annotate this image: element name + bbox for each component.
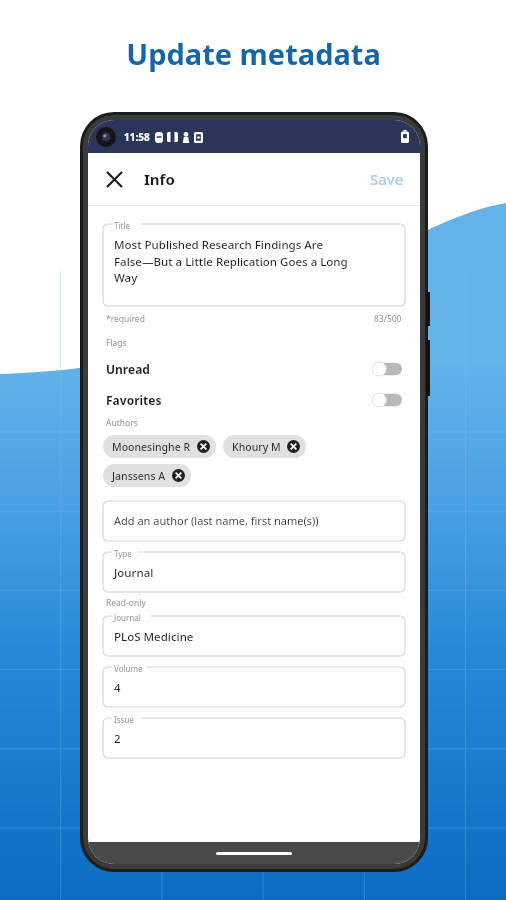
button[interactable]: Favorites [103, 384, 405, 415]
staticText: Favorites [106, 392, 162, 408]
button[interactable]: Unread [103, 353, 405, 384]
staticText: Type [114, 548, 132, 559]
staticText: Journal [114, 565, 154, 581]
staticText: Issue [114, 714, 134, 725]
button[interactable]: Add an author (last name, first name(s)) [103, 501, 405, 541]
staticText: Update metadata [126, 34, 381, 73]
staticText: 2 [114, 731, 121, 747]
staticText: Unread [106, 361, 150, 377]
button[interactable]: Type [103, 552, 405, 592]
staticText: 83/500 [374, 313, 402, 325]
staticText: Khoury M [232, 440, 281, 454]
button[interactable]: Journal [103, 616, 405, 656]
staticText: Volume [114, 663, 143, 674]
staticText: Journal [114, 612, 141, 623]
staticText: Authors [106, 417, 138, 429]
staticText: *required [106, 313, 145, 325]
button[interactable]: Moonesinghe R [103, 435, 216, 458]
button[interactable]: Title [103, 224, 405, 306]
staticText: Moonesinghe R [112, 440, 191, 454]
staticText: Save [370, 169, 404, 189]
button[interactable]: Save [354, 161, 420, 197]
staticText: Info [144, 169, 175, 189]
button[interactable]: Janssens A [103, 464, 191, 487]
button[interactable]: Issue [103, 718, 405, 758]
button[interactable]: Close [96, 161, 132, 197]
staticText: 4 [114, 680, 121, 696]
button[interactable]: Volume [103, 667, 405, 707]
staticText: Read-only [106, 597, 146, 609]
staticText: PLoS Medicine [114, 629, 194, 645]
staticText: Most Published Research Findings Are Fal… [114, 237, 348, 285]
staticText: Title [114, 220, 130, 231]
staticText: 11:58 [124, 130, 150, 144]
staticText: Flags [106, 337, 127, 349]
staticText: Add an author (last name, first name(s)) [114, 513, 319, 528]
button[interactable]: Khoury M [223, 435, 306, 458]
staticText: Janssens A [112, 469, 166, 483]
